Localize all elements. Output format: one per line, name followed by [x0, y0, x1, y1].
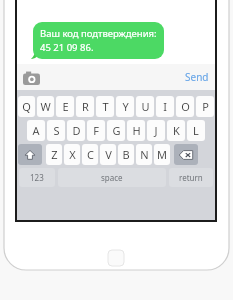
button[interactable]: Q — [18, 96, 35, 117]
staticText: J — [154, 123, 158, 138]
button[interactable]: M — [154, 144, 170, 165]
staticText: C — [87, 147, 94, 162]
button[interactable]: B — [118, 144, 134, 165]
staticText: S — [53, 123, 60, 138]
button[interactable]: O — [176, 96, 194, 117]
staticText: R — [82, 99, 89, 114]
staticText: G — [112, 123, 121, 138]
staticText: return — [179, 172, 203, 183]
staticText: B — [122, 147, 130, 162]
staticText: A — [32, 123, 40, 138]
staticText: K — [173, 123, 180, 138]
staticText: D — [72, 123, 81, 138]
button[interactable]: F — [87, 120, 105, 141]
button[interactable]: P — [196, 96, 214, 117]
button[interactable]: S — [47, 120, 65, 141]
button[interactable]: T — [96, 96, 114, 117]
staticText: T — [102, 99, 109, 114]
staticText: M — [157, 147, 167, 162]
staticText: O — [181, 99, 190, 114]
staticText: L — [193, 123, 199, 138]
button[interactable]: A — [27, 120, 45, 141]
staticText: X — [69, 147, 76, 162]
button[interactable]: Camera — [21, 69, 41, 86]
staticText: 123 — [30, 172, 44, 183]
staticText: W — [40, 99, 51, 114]
staticText: I — [163, 99, 167, 114]
button[interactable]: Send — [185, 70, 209, 84]
button[interactable]: G — [107, 120, 125, 141]
staticText: F — [93, 123, 99, 138]
button[interactable]: return — [169, 168, 213, 187]
button[interactable]: R — [76, 96, 94, 117]
button[interactable]: Y — [116, 96, 134, 117]
button[interactable]: V — [100, 144, 116, 165]
staticText: E — [62, 99, 69, 114]
staticText: V — [105, 147, 112, 162]
staticText: Z — [51, 147, 58, 162]
button[interactable]: Z — [46, 144, 62, 165]
button[interactable]: D — [67, 120, 85, 141]
staticText: U — [141, 99, 150, 114]
staticText: Ваш код подтверждения: — [40, 27, 157, 40]
staticText: N — [140, 147, 149, 162]
button[interactable]: L — [187, 120, 205, 141]
button[interactable]: H — [127, 120, 145, 141]
button[interactable]: C — [82, 144, 98, 165]
staticText: P — [202, 99, 209, 114]
button[interactable]: U — [136, 96, 154, 117]
button[interactable]: space — [58, 168, 166, 187]
staticText: 45 21 09 86. — [40, 41, 94, 54]
button[interactable]: W — [37, 96, 54, 117]
button[interactable]: I — [156, 96, 174, 117]
button[interactable]: X — [64, 144, 80, 165]
button[interactable]: E — [56, 96, 74, 117]
staticText: Q — [22, 99, 31, 114]
button[interactable]: K — [167, 120, 185, 141]
button[interactable]: Home — [108, 250, 124, 266]
staticText: Y — [122, 99, 129, 114]
button[interactable]: Shift — [18, 144, 42, 165]
button[interactable]: J — [147, 120, 165, 141]
button[interactable]: Ваш код подтверждения: — [33, 22, 164, 59]
button[interactable]: 123 — [19, 168, 55, 187]
button[interactable]: Backspace — [174, 144, 198, 165]
staticText: space — [101, 172, 123, 183]
button[interactable]: N — [136, 144, 152, 165]
staticText: Send — [185, 70, 209, 84]
staticText: H — [132, 123, 141, 138]
